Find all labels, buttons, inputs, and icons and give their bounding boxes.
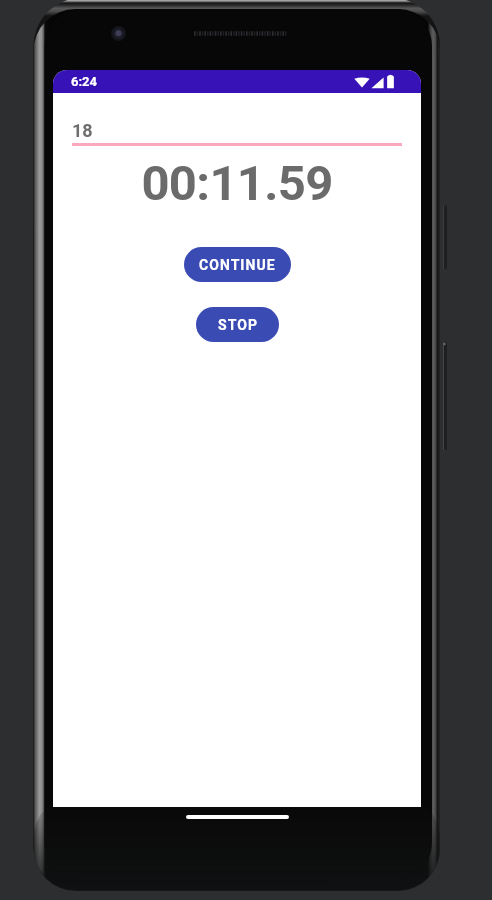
staticText: 6:24 <box>71 74 98 89</box>
button[interactable]: 18 <box>72 120 402 146</box>
other: Signal <box>371 75 384 89</box>
staticText: CONTINUE <box>199 257 276 273</box>
staticText: 18 <box>72 120 93 141</box>
other: Battery <box>387 74 394 89</box>
button[interactable]: STOP <box>196 307 279 342</box>
button[interactable]: CONTINUE <box>184 247 291 282</box>
staticText: 00:11.59 <box>53 155 421 212</box>
other: Wi-Fi <box>354 75 370 89</box>
staticText: STOP <box>218 317 258 333</box>
